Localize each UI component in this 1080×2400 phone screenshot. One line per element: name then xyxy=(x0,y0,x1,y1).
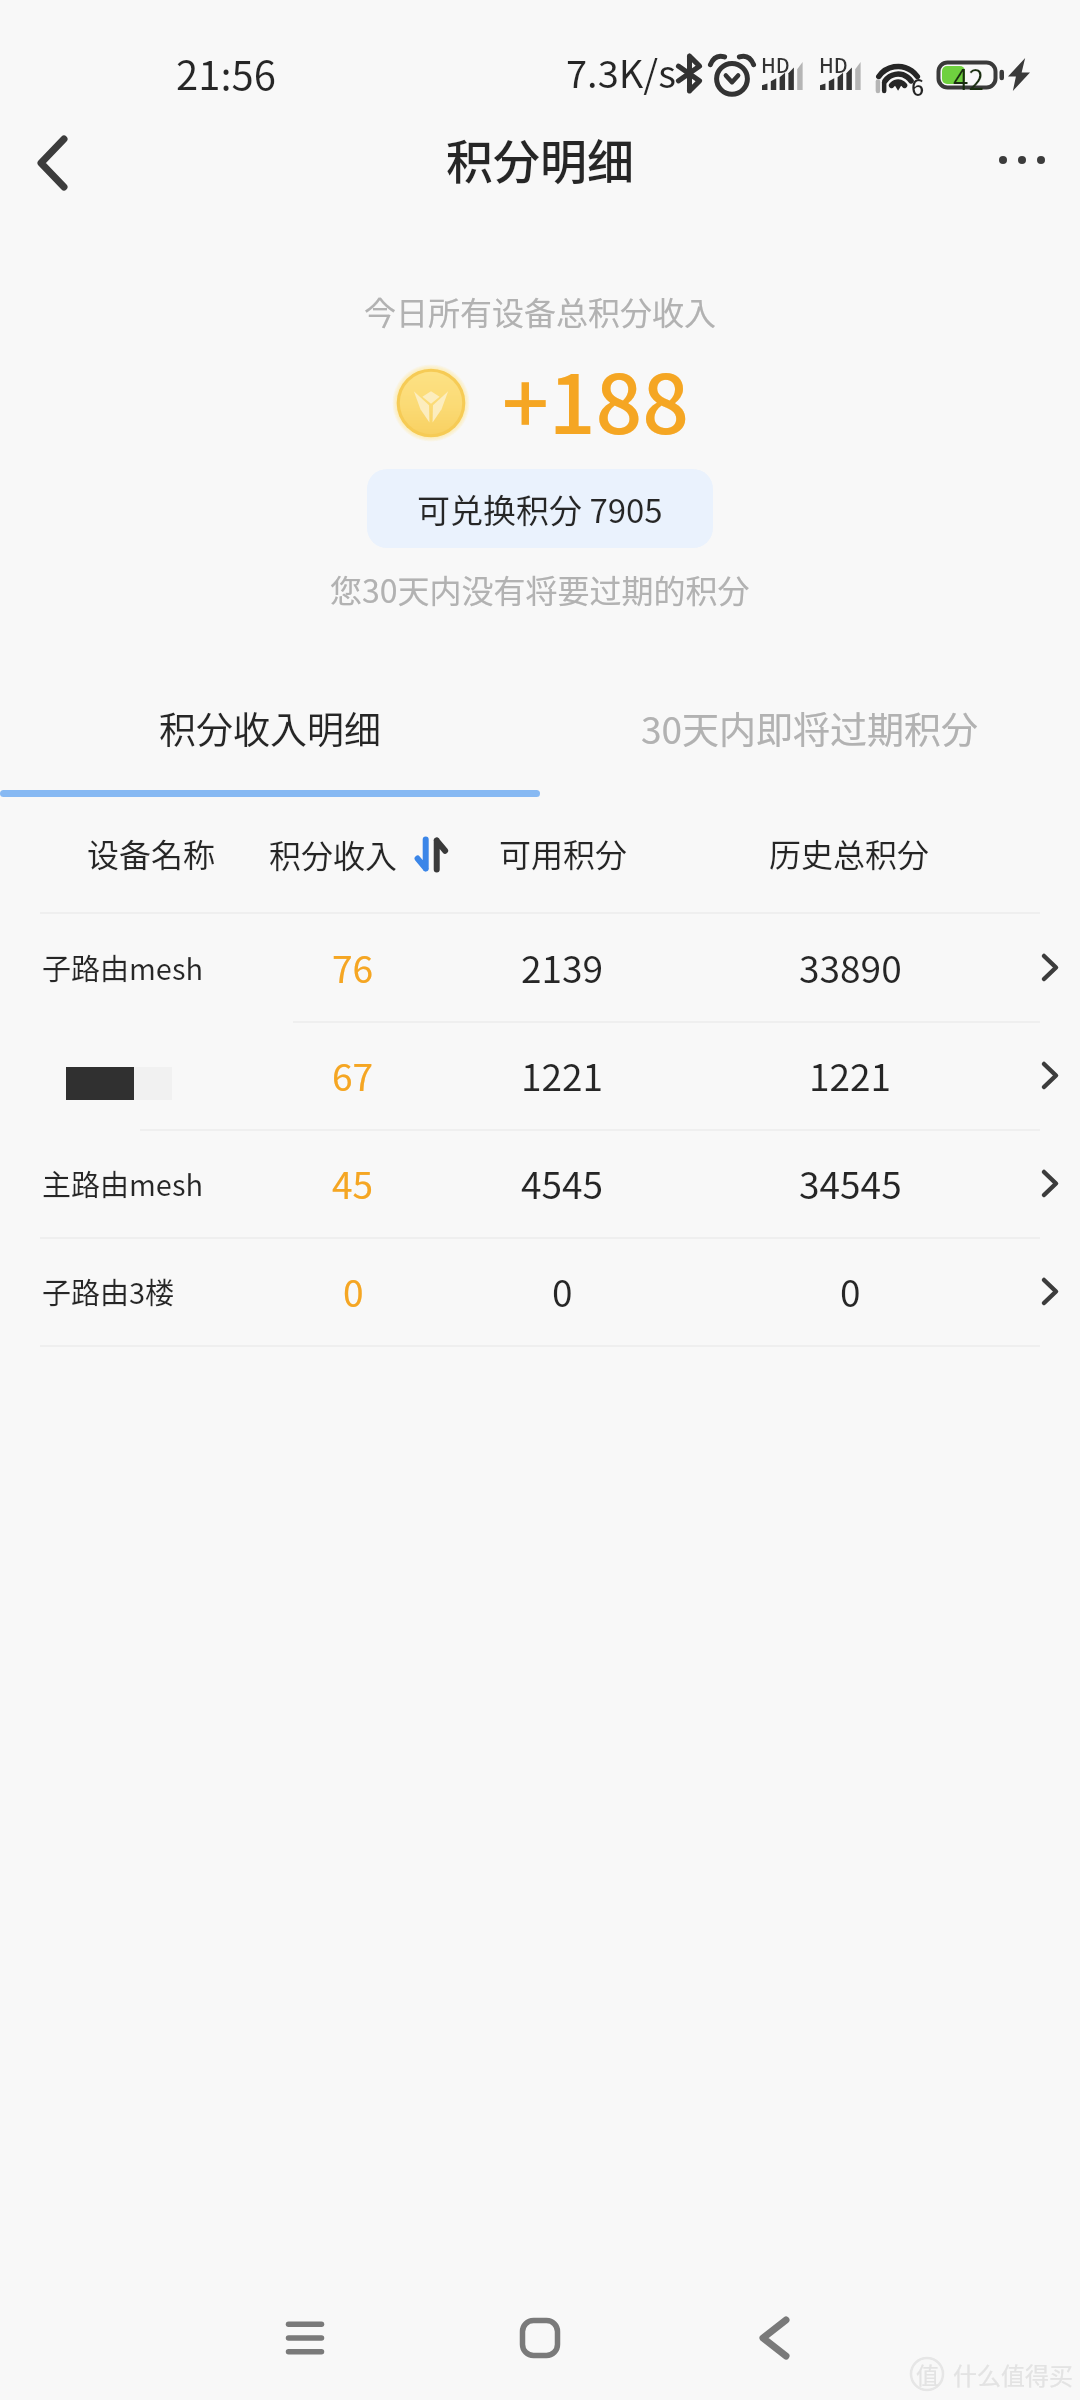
staticText: 6 xyxy=(911,69,925,102)
staticText: 积分明细 xyxy=(446,124,634,192)
staticText: 34545 xyxy=(799,1156,902,1210)
staticText: 什么值得买 xyxy=(953,2357,1073,2392)
button[interactable]: More options xyxy=(970,108,1074,212)
button[interactable]: 可兑换积分 7905 xyxy=(367,469,713,548)
staticText: 76 xyxy=(332,940,374,994)
staticText: 设备名称 xyxy=(87,830,216,876)
staticText: 67 xyxy=(332,1048,374,1102)
staticText: 2139 xyxy=(521,940,604,994)
button[interactable]: 主路由mesh xyxy=(0,1129,1080,1237)
button[interactable]: Recent apps xyxy=(255,2288,355,2388)
staticText: 积分收入明细 xyxy=(159,701,381,755)
button[interactable]: 30天内即将过期积分 xyxy=(540,670,1080,792)
staticText: 42 xyxy=(953,58,985,99)
staticText: 子路由mesh xyxy=(42,946,204,988)
staticText: 7.3K/s xyxy=(566,44,676,99)
staticText: 45 xyxy=(332,1156,374,1210)
staticText: 主路由mesh xyxy=(42,1162,204,1204)
button[interactable]: Back xyxy=(724,2288,824,2388)
staticText: 积分收入 xyxy=(269,831,398,877)
staticText: +188 xyxy=(502,339,689,458)
staticText: 值 xyxy=(916,2357,939,2390)
staticText: 30天内即将过期积分 xyxy=(641,701,979,755)
staticText: 1221 xyxy=(521,1048,604,1102)
button[interactable]: 子路由mesh xyxy=(0,913,1080,1021)
staticText: HD xyxy=(819,50,848,79)
staticText: 可兑换积分 7905 xyxy=(417,485,663,533)
staticText: 子路由3楼 xyxy=(42,1270,175,1312)
button[interactable]: Back xyxy=(2,110,102,216)
button[interactable]: 子路由3楼 xyxy=(0,1237,1080,1345)
staticText: 0 xyxy=(840,1264,861,1318)
staticText: 可用积分 xyxy=(499,830,628,876)
staticText: HD xyxy=(761,50,790,79)
staticText: 0 xyxy=(343,1264,364,1318)
staticText: 1221 xyxy=(809,1048,892,1102)
staticText: 您30天内没有将要过期的积分 xyxy=(330,566,750,612)
staticText: 0 xyxy=(552,1264,573,1318)
staticText: 33890 xyxy=(799,940,902,994)
staticText: 4545 xyxy=(521,1156,604,1210)
button[interactable]: 67 xyxy=(0,1021,1080,1129)
staticText: 历史总积分 xyxy=(769,830,930,876)
button[interactable]: Home xyxy=(490,2288,590,2388)
staticText: 21:56 xyxy=(176,44,276,102)
button[interactable]: 积分收入明细 xyxy=(0,670,540,792)
staticText: 今日所有设备总积分收入 xyxy=(364,288,717,334)
